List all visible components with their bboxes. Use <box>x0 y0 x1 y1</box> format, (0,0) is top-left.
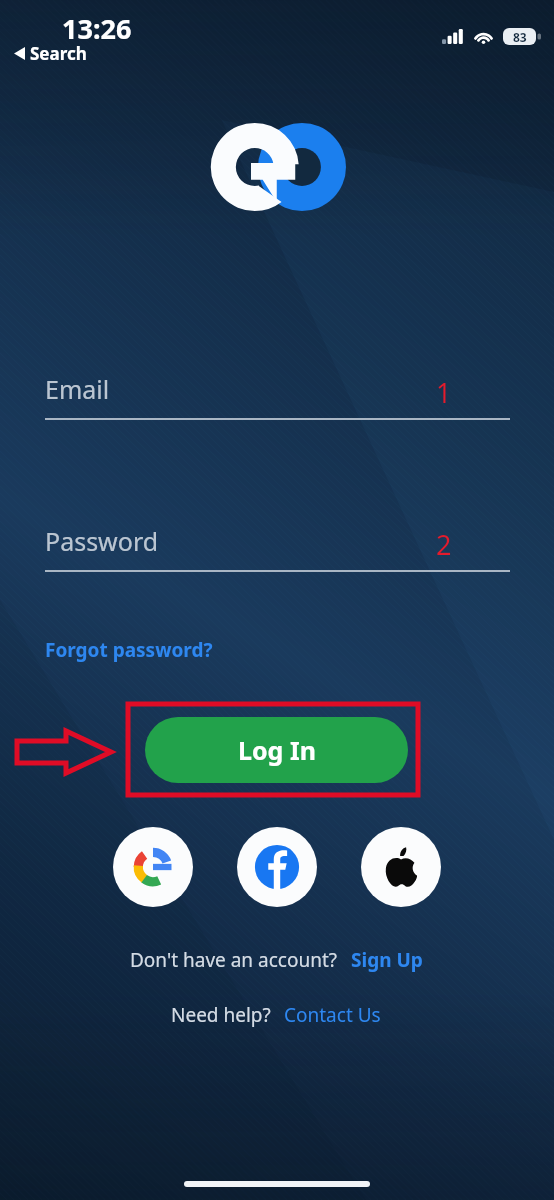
staticText: Password <box>45 524 159 558</box>
staticText: 83 <box>513 29 527 45</box>
staticText: Log In <box>238 733 316 767</box>
button[interactable]: Log In <box>145 717 408 783</box>
button[interactable]: Sign in with Google <box>113 827 193 907</box>
button[interactable]: Sign Up <box>349 945 425 975</box>
button[interactable]: Email <box>0 372 554 428</box>
staticText: 1 <box>436 374 452 411</box>
button[interactable]: Contact Us <box>282 1000 383 1030</box>
staticText: Email <box>45 372 110 406</box>
staticText: 2 <box>436 526 452 563</box>
button[interactable]: Sign in with Apple <box>361 827 441 907</box>
staticText: 13:26 <box>62 10 132 47</box>
staticText: Contact Us <box>284 1002 381 1028</box>
staticText: Need help? <box>171 1002 271 1028</box>
button[interactable]: Password <box>0 524 554 580</box>
staticText: Search <box>30 42 87 65</box>
button[interactable]: Sign in with Facebook <box>237 827 317 907</box>
staticText: Don't have an account? <box>130 947 338 973</box>
staticText: Sign Up <box>351 947 423 973</box>
button[interactable]: Forgot password? <box>43 632 215 668</box>
staticText: Forgot password? <box>45 637 213 663</box>
